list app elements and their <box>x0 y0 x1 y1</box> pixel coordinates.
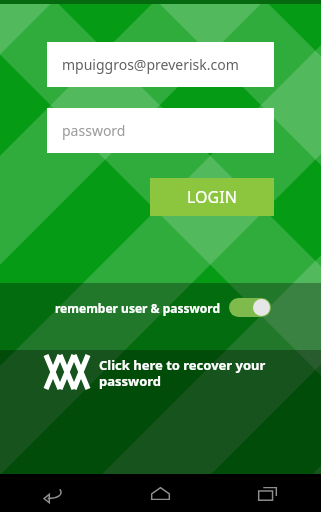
button[interactable]: mpuiggros@preverisk.com <box>47 42 274 87</box>
button[interactable]: LOGIN <box>150 178 274 216</box>
button[interactable]: remember user & password <box>0 274 321 341</box>
staticText: remember user & password <box>55 300 220 316</box>
button[interactable]: Home <box>107 474 214 512</box>
staticText: password <box>62 121 126 140</box>
staticText: Click here to recover your password <box>99 356 267 389</box>
button[interactable]: Recent apps <box>214 474 321 512</box>
staticText: LOGIN <box>187 186 237 208</box>
button[interactable]: password <box>47 108 274 153</box>
staticText: mpuiggros@preverisk.com <box>62 55 239 74</box>
button[interactable]: Click here to recover your password <box>0 341 321 403</box>
button[interactable]: Back <box>0 474 107 512</box>
